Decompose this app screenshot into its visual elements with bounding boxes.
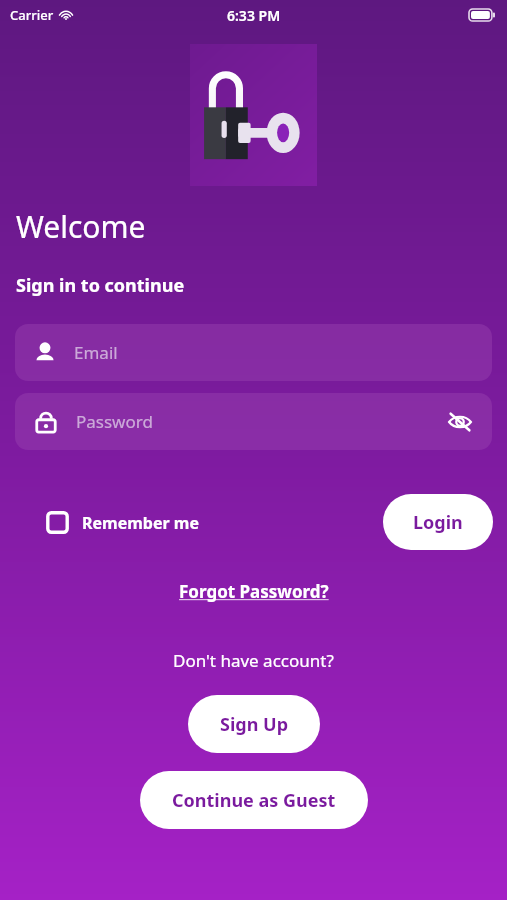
staticText: 6:33 PM	[227, 6, 281, 25]
button[interactable]: Toggle password visibility	[445, 407, 475, 437]
staticText: Welcome	[16, 206, 146, 247]
staticText: Carrier	[10, 6, 54, 24]
staticText: Remember me	[82, 512, 199, 534]
staticText: Password	[76, 410, 153, 433]
button[interactable]: Login	[383, 494, 493, 550]
staticText: Forgot Password?	[179, 580, 329, 603]
button[interactable]: Password	[15, 393, 492, 450]
staticText: Don't have account?	[173, 649, 334, 672]
staticText: Sign in to continue	[16, 273, 185, 298]
staticText: Sign Up	[220, 712, 289, 737]
button[interactable]: Forgot Password?	[171, 576, 337, 607]
staticText: Continue as Guest	[172, 788, 336, 813]
button[interactable]: Continue as Guest	[140, 771, 368, 829]
staticText: Email	[74, 341, 118, 364]
button[interactable]: Sign Up	[188, 695, 320, 753]
button[interactable]: Email	[15, 324, 492, 381]
button[interactable]: Remember me	[16, 503, 205, 542]
staticText: Login	[413, 510, 463, 535]
